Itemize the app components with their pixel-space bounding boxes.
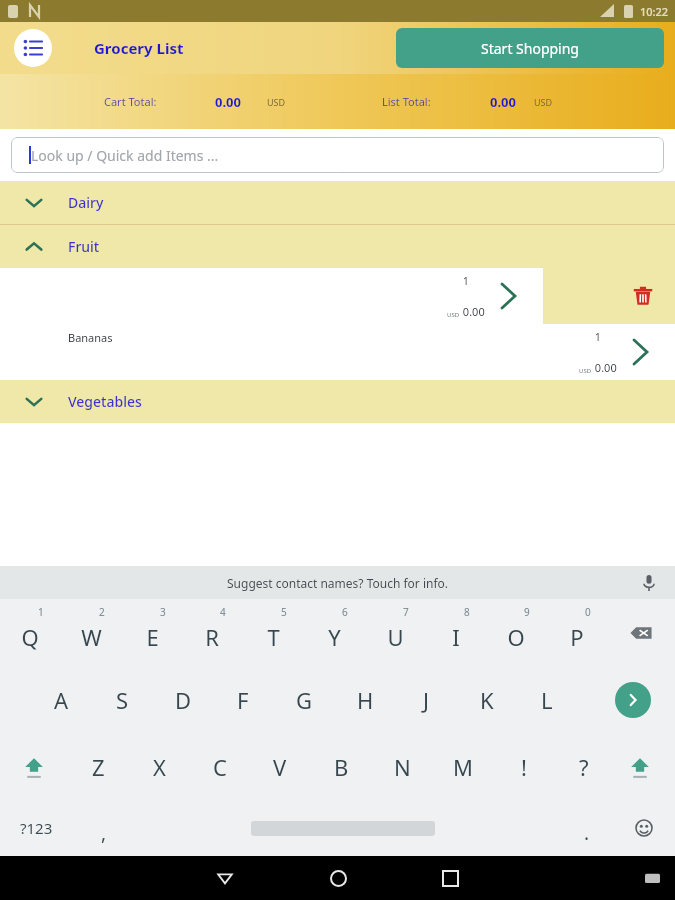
staticText: 3 (160, 605, 166, 619)
button[interactable]: I (430, 599, 482, 666)
button[interactable]: R (186, 599, 238, 666)
button[interactable]: Voice input (635, 569, 663, 597)
staticText: Start Shopping (481, 39, 579, 58)
button[interactable]: Back (202, 856, 248, 900)
staticText: 0.00 (592, 360, 617, 375)
button[interactable]: V (254, 733, 306, 800)
staticText: Y (328, 622, 341, 652)
staticText: N (394, 752, 411, 782)
staticText: 4 (220, 605, 226, 619)
staticText: ? (579, 752, 589, 782)
button[interactable]: S (96, 666, 148, 733)
button[interactable]: L (521, 666, 573, 733)
staticText: J (423, 685, 430, 715)
staticText: D (175, 685, 192, 715)
staticText: A (54, 685, 69, 715)
staticText: X (153, 752, 166, 782)
button[interactable]: Dairy (0, 181, 675, 224)
staticText: . (584, 820, 590, 846)
button[interactable]: P (551, 599, 603, 666)
staticText: 5 (281, 605, 287, 619)
staticText: 0.00 (490, 93, 516, 111)
button[interactable]: G (278, 666, 330, 733)
button[interactable]: K (461, 666, 513, 733)
staticText: , (101, 820, 107, 846)
button[interactable]: ?123 (8, 800, 64, 856)
staticText: 6 (342, 605, 348, 619)
staticText: Fruit (68, 237, 100, 256)
staticText: U (387, 622, 404, 652)
staticText: 8 (464, 605, 470, 619)
staticText: Cart Total: (104, 94, 157, 109)
button[interactable]: C (194, 733, 246, 800)
button[interactable]: N (376, 733, 428, 800)
button[interactable]: F (217, 666, 269, 733)
staticText: Q (21, 622, 39, 652)
staticText: Look up / Quick add Items ... (31, 146, 219, 165)
button[interactable]: D (157, 666, 209, 733)
staticText: V (273, 752, 287, 782)
button[interactable]: Keyboard switcher (637, 863, 667, 893)
staticText: H (357, 685, 374, 715)
button[interactable]: U (369, 599, 421, 666)
button[interactable]: O (490, 599, 542, 666)
staticText: S (116, 685, 129, 715)
button[interactable]: H (339, 666, 391, 733)
staticText: O (507, 622, 525, 652)
staticText: 7 (403, 605, 409, 619)
staticText: P (570, 622, 584, 652)
button[interactable]: Q (4, 599, 56, 666)
button[interactable]: Look up / Quick add Items ... (11, 137, 664, 173)
staticText: R (205, 622, 219, 652)
button[interactable]: B (315, 733, 367, 800)
button[interactable]: J (400, 666, 452, 733)
button[interactable]: Backspace (619, 611, 663, 655)
staticText: ! (521, 752, 527, 782)
button[interactable]: Home (315, 856, 361, 900)
button[interactable]: . (565, 800, 609, 856)
button[interactable]: T (247, 599, 299, 666)
button[interactable]: W (65, 599, 117, 666)
staticText: Dairy (68, 193, 104, 212)
button[interactable]: Menu (14, 29, 52, 67)
button[interactable]: Shift (11, 744, 57, 790)
button[interactable]: , (82, 800, 126, 856)
button[interactable]: ? (558, 733, 610, 800)
button[interactable]: Z (72, 733, 124, 800)
staticText: C (213, 752, 227, 782)
staticText: 1 (38, 605, 44, 619)
staticText: 2 (99, 605, 105, 619)
button[interactable]: E (126, 599, 178, 666)
staticText: List Total: (382, 94, 431, 109)
staticText: Suggest contact names? Touch for info. (227, 575, 449, 591)
staticText: I (452, 622, 460, 652)
button[interactable]: X (133, 733, 185, 800)
staticText: USD (534, 96, 553, 108)
button[interactable]: ! (498, 733, 550, 800)
staticText: 0 (585, 605, 591, 619)
staticText: USD (267, 96, 286, 108)
staticText: M (453, 752, 473, 782)
button[interactable]: Vegetables (0, 380, 675, 423)
button[interactable]: M (437, 733, 489, 800)
staticText: L (541, 685, 553, 715)
button[interactable]: Enter (615, 682, 651, 718)
button[interactable]: Start Shopping (396, 28, 664, 68)
staticText: USD (447, 311, 460, 319)
staticText: USD (579, 367, 592, 375)
button[interactable]: Fruit (0, 225, 675, 268)
button[interactable]: Recents (427, 856, 473, 900)
button[interactable]: Bananas (0, 324, 675, 380)
button[interactable]: Shift (617, 744, 663, 790)
staticText: Bananas (68, 330, 113, 345)
staticText: Grocery List (94, 38, 184, 58)
button[interactable]: Emoji (627, 811, 661, 845)
staticText: B (334, 752, 349, 782)
button[interactable]: Delete (621, 274, 665, 318)
staticText: Z (92, 752, 105, 782)
staticText: G (296, 685, 313, 715)
button[interactable]: Y (308, 599, 360, 666)
button[interactable]: A (35, 666, 87, 733)
staticText: K (480, 685, 494, 715)
